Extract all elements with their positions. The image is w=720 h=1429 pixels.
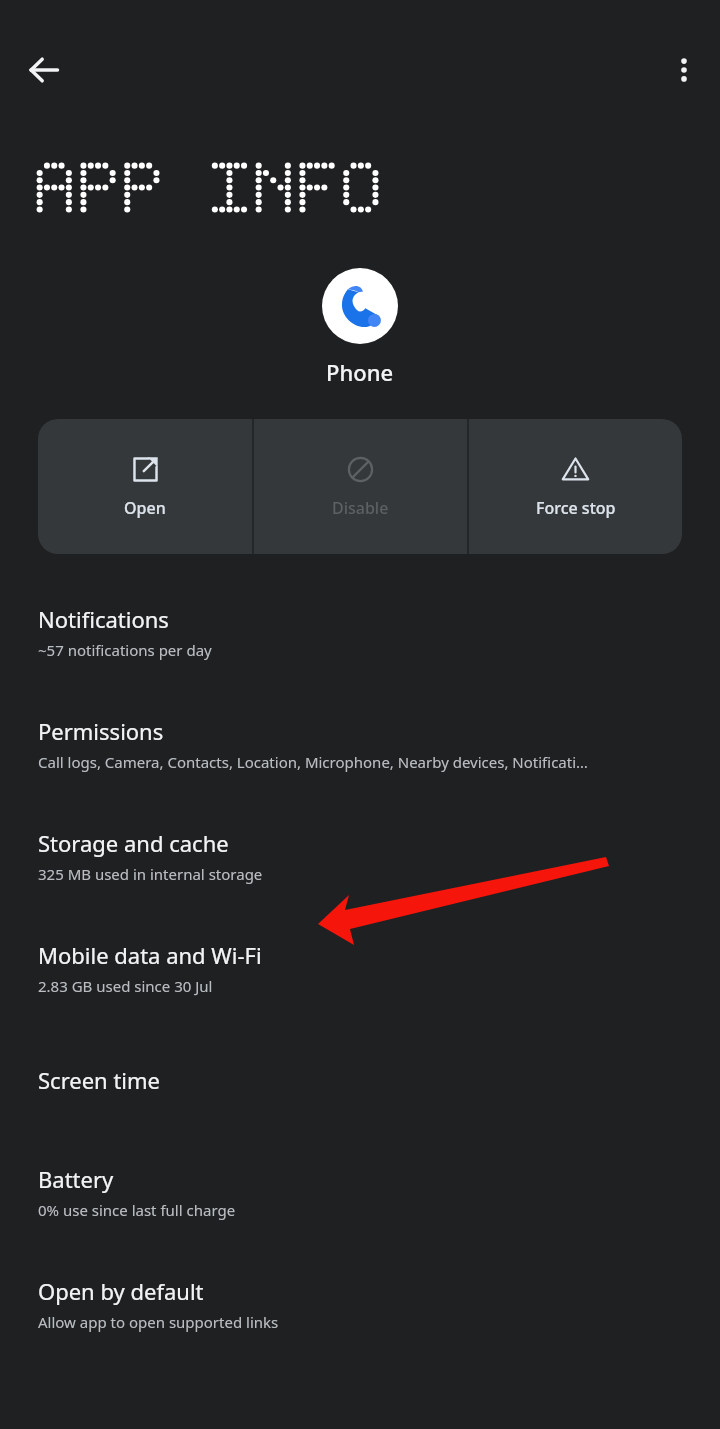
staticText: Permissions (38, 716, 164, 746)
button[interactable]: Mobile data and Wi-Fi (0, 912, 720, 1024)
staticText: Force stop (536, 497, 616, 519)
button[interactable]: Open (38, 419, 252, 554)
staticText: Notifications (38, 604, 169, 634)
button[interactable]: Back (16, 42, 72, 98)
staticText: Disable (332, 497, 389, 519)
button[interactable]: Permissions (0, 688, 720, 800)
staticText: 325 MB used in internal storage (38, 864, 263, 884)
staticText: 0% use since last full charge (38, 1200, 236, 1220)
button[interactable]: Open by default (0, 1248, 720, 1360)
staticText: Open (124, 497, 166, 519)
staticText: Call logs, Camera, Contacts, Location, M… (38, 752, 588, 772)
button[interactable]: Notifications (0, 576, 720, 688)
staticText: Mobile data and Wi-Fi (38, 940, 262, 970)
button[interactable]: Disable (254, 419, 467, 554)
staticText: Open by default (38, 1276, 204, 1306)
staticText: Allow app to open supported links (38, 1312, 279, 1332)
staticText: Phone (326, 357, 394, 387)
button[interactable]: Battery (0, 1136, 720, 1248)
button[interactable]: Storage and cache (0, 800, 720, 912)
button[interactable]: Force stop (469, 419, 682, 554)
staticText: Battery (38, 1164, 114, 1194)
button[interactable]: Screen time (0, 1024, 720, 1136)
staticText: ~57 notifications per day (38, 640, 212, 660)
staticText: Screen time (38, 1065, 161, 1095)
button[interactable]: More options (656, 42, 712, 98)
staticText: 2.83 GB used since 30 Jul (38, 976, 213, 996)
staticText: Storage and cache (38, 828, 229, 858)
